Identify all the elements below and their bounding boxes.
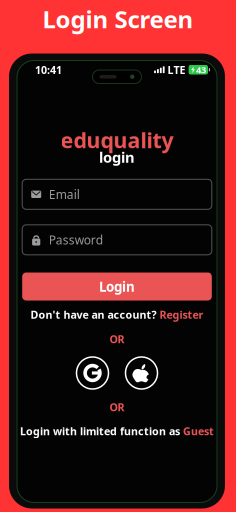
staticText: 10:41 [35, 63, 62, 77]
staticText: Email [49, 186, 80, 202]
staticText: Login Screen [42, 3, 193, 35]
staticText: OR [109, 400, 124, 414]
staticText: OR [109, 332, 124, 346]
staticText: LTE [168, 63, 186, 77]
button[interactable]: Register [159, 307, 203, 322]
staticText: 43 [196, 64, 206, 76]
button[interactable]: Continue with Apple [125, 356, 158, 389]
button[interactable]: Email [22, 179, 212, 209]
staticText: login [99, 147, 135, 167]
staticText: eduquality [60, 126, 173, 154]
button[interactable]: Login [22, 272, 212, 300]
staticText: Guest [183, 424, 214, 438]
button[interactable]: Guest [183, 424, 214, 438]
staticText: Password [49, 232, 103, 248]
staticText: Login with limited function as [20, 424, 180, 438]
staticText: Don't have an account? [30, 307, 156, 322]
staticText: Login [99, 278, 135, 295]
button[interactable]: Password [22, 225, 212, 255]
button[interactable]: Continue with Google [76, 356, 109, 389]
staticText: Register [159, 307, 203, 322]
